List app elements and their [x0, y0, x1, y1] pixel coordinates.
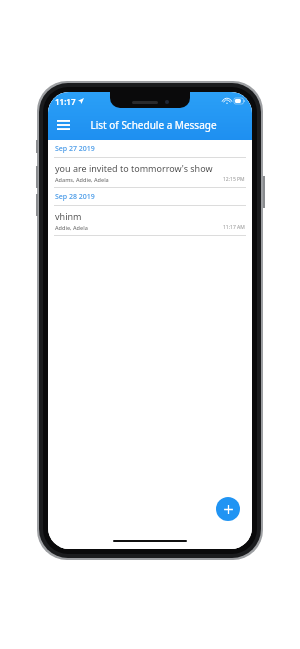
staticText: vhinm [55, 210, 82, 222]
staticText: you are invited to tommorrow's show [55, 162, 213, 174]
staticText: Sep 28 2019 [55, 192, 95, 202]
button[interactable]: Add new scheduled message [216, 497, 240, 521]
staticText: Addie, Adela [55, 224, 88, 231]
staticText: 11:17 [55, 96, 76, 107]
staticText: List of Schedule a Message [90, 118, 217, 132]
button[interactable]: you are invited to tommorrow's show [48, 157, 252, 188]
staticText: Sep 27 2019 [55, 144, 95, 154]
staticText: Adams, Addie, Adela [55, 176, 109, 183]
button[interactable]: vhinm [48, 205, 252, 236]
staticText: 11:17 AM [223, 224, 245, 231]
staticText: 12:15 PM [223, 176, 245, 183]
button[interactable]: Open navigation menu [48, 110, 78, 140]
